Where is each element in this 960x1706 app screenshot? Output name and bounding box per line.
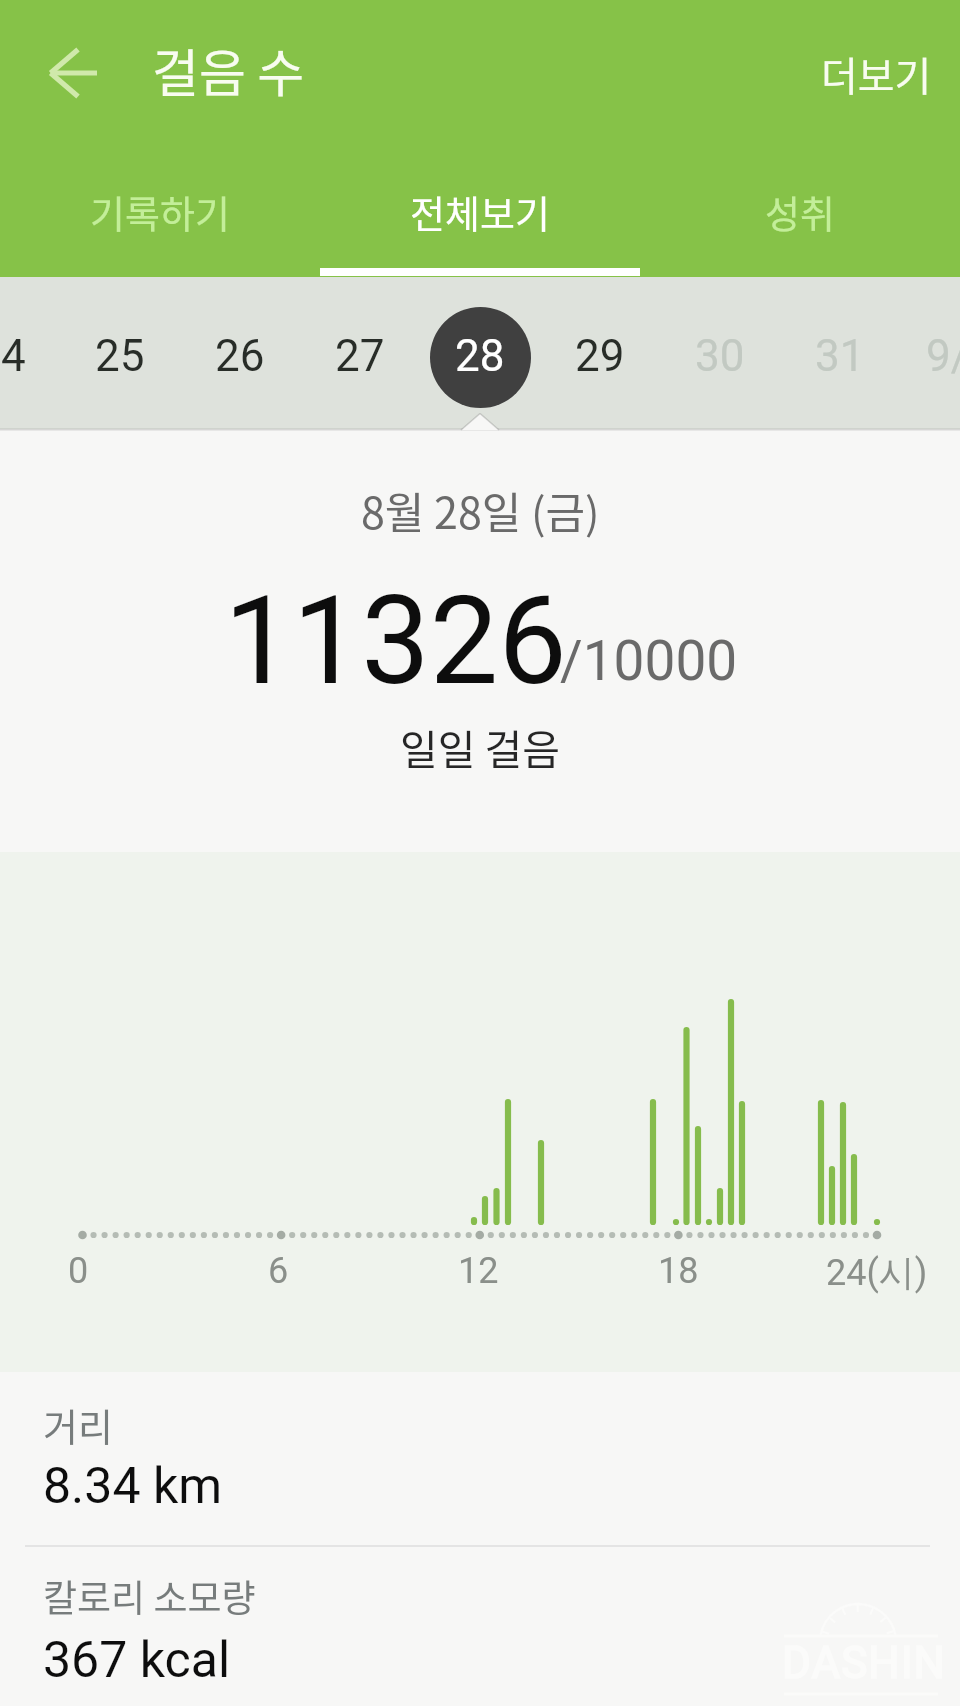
staticText: 12 <box>458 1250 499 1292</box>
staticText: 4 <box>1 330 26 382</box>
staticText: 일일 걸음 <box>400 717 561 776</box>
staticText: 8.34 km <box>43 1457 223 1516</box>
button[interactable]: 전체보기 <box>320 147 640 277</box>
staticText: 28 <box>455 330 505 382</box>
staticText: 18 <box>658 1250 699 1292</box>
staticText: 8월 28일 (금) <box>361 479 600 541</box>
staticText: 30 <box>695 330 745 382</box>
staticText: 거리 <box>43 1397 113 1452</box>
staticText: 기록하기 <box>90 184 230 239</box>
staticText: 29 <box>575 330 625 382</box>
staticText: 26 <box>215 330 265 382</box>
button[interactable]: 26 <box>180 281 300 433</box>
staticText: 367 kcal <box>43 1631 231 1690</box>
button[interactable]: 9/ <box>887 281 960 433</box>
button[interactable] <box>0 1372 960 1545</box>
staticText: 전체보기 <box>410 184 550 239</box>
staticText: 31 <box>815 330 865 382</box>
staticText: 24(시) <box>826 1250 928 1295</box>
staticText: 11326 <box>224 570 567 713</box>
staticText: 0 <box>68 1250 89 1292</box>
staticText: 9/ <box>926 330 960 382</box>
staticText: 27 <box>335 330 385 382</box>
button[interactable]: 기록하기 <box>0 147 320 277</box>
staticText: 칼로리 소모량 <box>43 1569 256 1623</box>
button[interactable]: 28 <box>420 281 540 433</box>
button[interactable]: 더보기 <box>800 30 940 110</box>
staticText: 6 <box>268 1250 289 1292</box>
staticText: 25 <box>95 330 145 382</box>
button[interactable]: 성취 <box>640 147 960 277</box>
button[interactable] <box>0 1547 960 1706</box>
button[interactable]: 25 <box>60 281 180 433</box>
staticText: 걸음 수 <box>152 33 305 107</box>
staticText: 더보기 <box>821 45 932 103</box>
staticText: /10000 <box>560 629 738 693</box>
button[interactable]: 31 <box>780 281 900 433</box>
staticText: 성취 <box>765 184 835 239</box>
button[interactable]: 4 <box>0 281 73 433</box>
button[interactable]: Back <box>40 40 106 106</box>
button[interactable]: 30 <box>660 281 780 433</box>
button[interactable]: 27 <box>300 281 420 433</box>
button[interactable]: 29 <box>540 281 660 433</box>
